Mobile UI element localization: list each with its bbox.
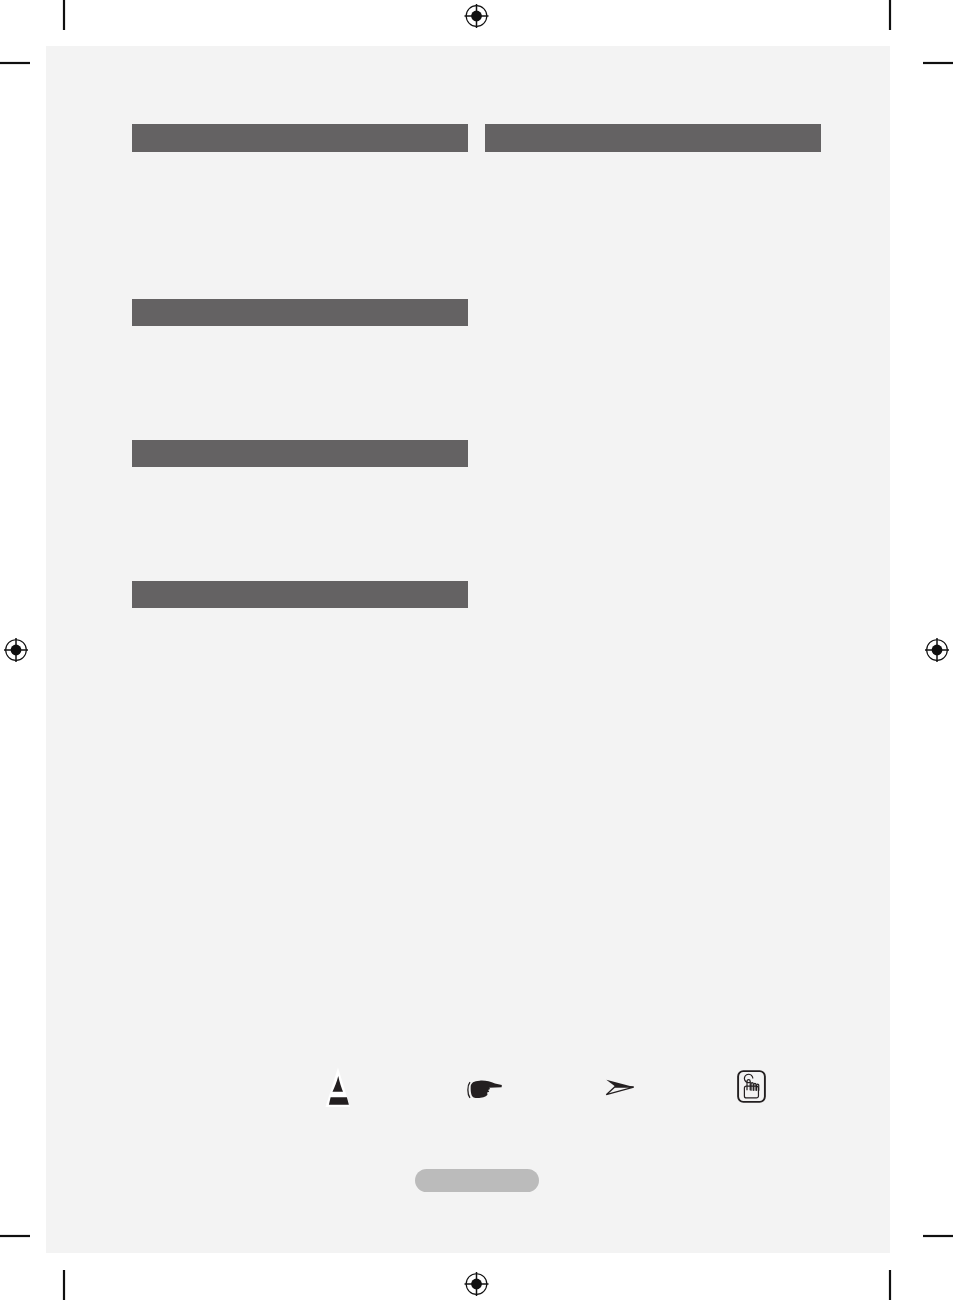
button[interactable]: Send: [606, 1078, 634, 1095]
button[interactable]: Warning: [325, 1066, 350, 1107]
button[interactable]: Tap gesture: [737, 1070, 766, 1103]
button[interactable]: Home indicator: [415, 1169, 539, 1192]
button[interactable]: Pointing hand: [467, 1080, 502, 1098]
